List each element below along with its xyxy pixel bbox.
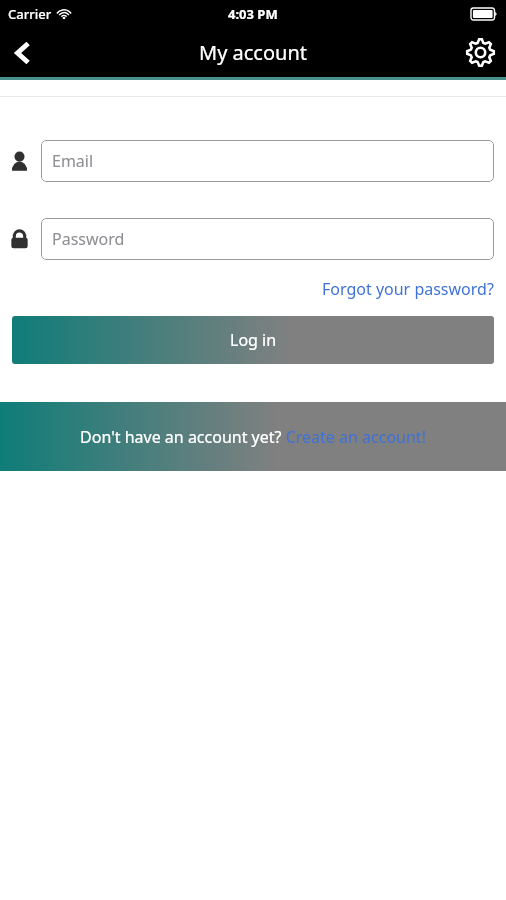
- staticText: Forgot your password?: [322, 278, 494, 300]
- staticText: Email: [52, 150, 94, 172]
- button[interactable]: Back: [0, 28, 46, 77]
- staticText: My account: [199, 39, 307, 66]
- button[interactable]: Don't have an account yet? Create an acc…: [0, 402, 506, 471]
- staticText: Carrier: [8, 5, 52, 23]
- staticText: Password: [52, 228, 125, 250]
- button[interactable]: Email: [41, 140, 494, 182]
- staticText: Log in: [230, 329, 277, 351]
- button[interactable]: Settings: [454, 28, 506, 77]
- button[interactable]: Log in: [12, 316, 494, 364]
- staticText: 4:03 PM: [228, 5, 278, 23]
- button[interactable]: Forgot your password?: [322, 278, 494, 300]
- button[interactable]: Password: [41, 218, 494, 260]
- staticText: Don't have an account yet? Create an acc…: [80, 426, 426, 448]
